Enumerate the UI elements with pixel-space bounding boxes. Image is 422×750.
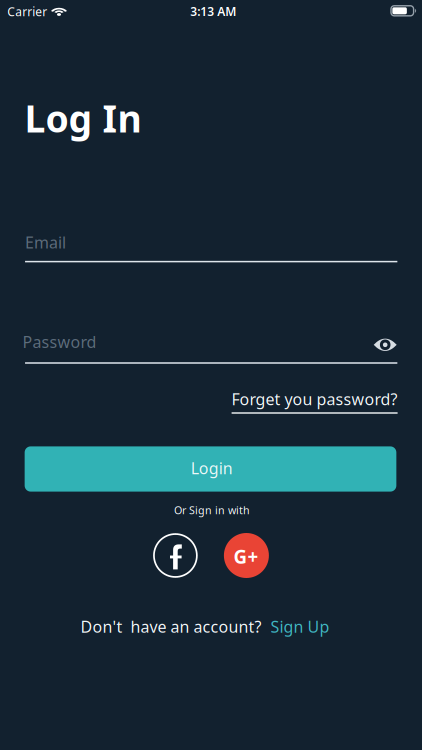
staticText: Login bbox=[191, 457, 233, 479]
button[interactable]: Sign in with Facebook bbox=[153, 533, 198, 578]
staticText: Password bbox=[22, 331, 96, 352]
button[interactable]: Sign Up bbox=[270, 616, 329, 637]
staticText: Don't have an account? bbox=[80, 616, 261, 637]
staticText: Log In bbox=[24, 93, 141, 143]
staticText: 3:13 AM bbox=[190, 3, 236, 19]
staticText: Or Sign in with bbox=[174, 503, 250, 517]
staticText: Forget you password? bbox=[232, 388, 398, 410]
staticText: Email bbox=[25, 232, 66, 253]
button[interactable]: Forget you password? bbox=[232, 388, 398, 410]
button[interactable]: Login bbox=[25, 446, 396, 492]
staticText: Carrier bbox=[7, 4, 47, 20]
button[interactable]: Sign in with Google bbox=[224, 533, 269, 578]
staticText: G+ bbox=[233, 544, 258, 569]
button[interactable]: Show password bbox=[374, 337, 397, 352]
staticText: Sign Up bbox=[270, 616, 329, 637]
